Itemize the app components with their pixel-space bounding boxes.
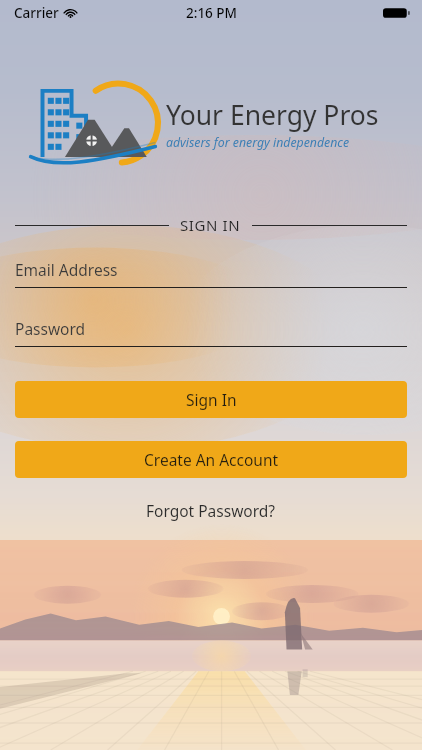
staticText: Email Address bbox=[15, 259, 118, 280]
staticText: 2:16 PM bbox=[186, 4, 237, 22]
staticText: SIGN IN bbox=[180, 215, 241, 235]
button[interactable]: Create An Account bbox=[15, 441, 407, 478]
button[interactable]: Email Address bbox=[15, 259, 407, 288]
staticText: Sign In bbox=[186, 389, 237, 410]
button[interactable]: Sign In bbox=[15, 381, 407, 418]
staticText: Carrier bbox=[14, 4, 59, 22]
staticText: Your Energy Pros bbox=[166, 97, 379, 133]
staticText: Forgot Password? bbox=[146, 500, 276, 521]
staticText: Password bbox=[15, 318, 86, 339]
button[interactable]: Password bbox=[15, 318, 407, 347]
staticText: Create An Account bbox=[144, 449, 279, 470]
button[interactable]: Forgot Password? bbox=[0, 500, 422, 521]
staticText: advisers for energy independence bbox=[166, 134, 350, 151]
